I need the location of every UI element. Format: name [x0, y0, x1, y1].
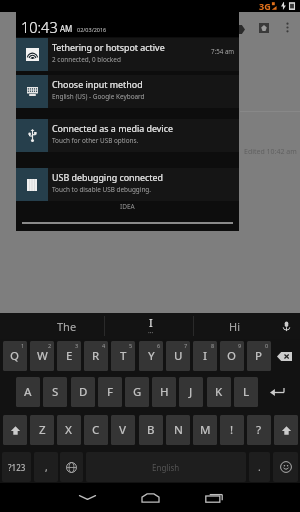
button[interactable]: X	[57, 415, 81, 445]
staticText: •••	[148, 330, 154, 336]
staticText: 5	[129, 342, 133, 349]
button[interactable]: .	[249, 452, 270, 482]
staticText: 6	[157, 342, 161, 349]
button[interactable]: I	[109, 313, 192, 339]
staticText: Edited 10:42 am	[244, 147, 297, 157]
staticText: X	[65, 422, 73, 438]
staticText: Touch to disable USB debugging.	[52, 185, 152, 194]
staticText: 7:54 am	[211, 47, 235, 55]
button[interactable]: L	[234, 377, 258, 407]
staticText: T	[120, 348, 127, 364]
button[interactable]: F	[98, 377, 122, 407]
button[interactable]: ,	[34, 452, 58, 482]
button[interactable]: Voice input	[273, 313, 299, 339]
button[interactable]: W	[30, 341, 54, 371]
button[interactable]: U	[166, 341, 190, 371]
button[interactable]: C	[84, 415, 108, 445]
button[interactable]: I	[193, 341, 217, 371]
button[interactable]: The	[25, 313, 109, 339]
button[interactable]: Home	[130, 483, 170, 512]
staticText: V	[119, 422, 127, 438]
button[interactable]: J	[179, 377, 203, 407]
button[interactable]: Connected as a media device	[16, 119, 239, 152]
button[interactable]: ?	[247, 415, 271, 445]
staticText: 10:43	[21, 17, 58, 37]
button[interactable]: E	[57, 341, 81, 371]
staticText: P	[255, 348, 263, 364]
staticText: O	[227, 348, 237, 364]
button[interactable]: K	[207, 377, 231, 407]
button[interactable]: Choose input method	[16, 75, 239, 108]
button[interactable]: Y	[139, 341, 163, 371]
staticText: 2	[48, 342, 52, 349]
button[interactable]: R	[84, 341, 108, 371]
staticText: 4	[102, 342, 106, 349]
button[interactable]: Shift	[274, 415, 298, 445]
staticText: K	[215, 384, 223, 400]
staticText: English	[152, 462, 180, 473]
staticText: The	[57, 319, 77, 334]
staticText: 9	[238, 342, 242, 349]
staticText: Connected as a media device	[52, 122, 173, 134]
button[interactable]: B	[139, 415, 163, 445]
staticText: I	[149, 315, 153, 330]
staticText: W	[37, 348, 48, 364]
staticText: C	[92, 422, 100, 438]
staticText: Tethering or hotspot active	[52, 41, 165, 53]
staticText: E	[66, 348, 73, 364]
staticText: ?123	[8, 462, 26, 473]
staticText: F	[107, 384, 114, 400]
staticText: 8	[211, 342, 215, 349]
staticText: English (US) - Google Keyboard	[52, 92, 145, 101]
staticText: I	[203, 348, 208, 364]
button[interactable]: M	[193, 415, 217, 445]
staticText: Touch for other USB options.	[52, 136, 139, 145]
button[interactable]: D	[71, 377, 95, 407]
staticText: Q	[10, 348, 20, 364]
button[interactable]: O	[220, 341, 244, 371]
button[interactable]: Q	[3, 341, 27, 371]
button[interactable]: S	[43, 377, 67, 407]
button[interactable]: !	[220, 415, 244, 445]
button[interactable]: More options	[277, 17, 297, 37]
staticText: USB debugging connected	[52, 171, 164, 183]
staticText: Y	[148, 348, 155, 364]
button[interactable]: Change language	[60, 452, 83, 482]
staticText: U	[174, 348, 183, 364]
button[interactable]: USB debugging connected	[16, 168, 239, 201]
staticText: B	[147, 422, 155, 438]
button[interactable]: V	[111, 415, 135, 445]
button[interactable]: N	[166, 415, 190, 445]
staticText: N	[174, 422, 183, 438]
button[interactable]: Tethering or hotspot active	[16, 38, 239, 71]
staticText: M	[200, 422, 211, 438]
staticText: R	[92, 348, 100, 364]
button[interactable]: Photo	[253, 17, 275, 39]
staticText: J	[189, 384, 193, 400]
button[interactable]: G	[125, 377, 149, 407]
staticText: 3G	[259, 0, 271, 12]
button[interactable]: English	[86, 452, 246, 482]
staticText: AM	[60, 23, 73, 34]
button[interactable]: Backspace	[270, 341, 298, 371]
staticText: 1	[21, 342, 25, 349]
staticText: H	[160, 384, 169, 400]
button[interactable]: ?123	[2, 452, 31, 482]
staticText: IDEA	[120, 202, 135, 211]
staticText: ?	[256, 422, 262, 438]
button[interactable]: A	[16, 377, 40, 407]
staticText: 7	[184, 342, 188, 349]
button[interactable]: Recent apps	[194, 483, 234, 512]
staticText: !	[230, 422, 234, 438]
button[interactable]: H	[152, 377, 176, 407]
button[interactable]: P	[247, 341, 271, 371]
button[interactable]: Back	[67, 483, 107, 512]
button[interactable]: Z	[30, 415, 54, 445]
button[interactable]: T	[111, 341, 135, 371]
button[interactable]: Shift	[3, 415, 27, 445]
button[interactable]: Hi	[194, 313, 274, 339]
button[interactable]: Enter	[256, 377, 298, 407]
button[interactable]: Emoji	[273, 452, 298, 482]
staticText: D	[79, 384, 88, 400]
